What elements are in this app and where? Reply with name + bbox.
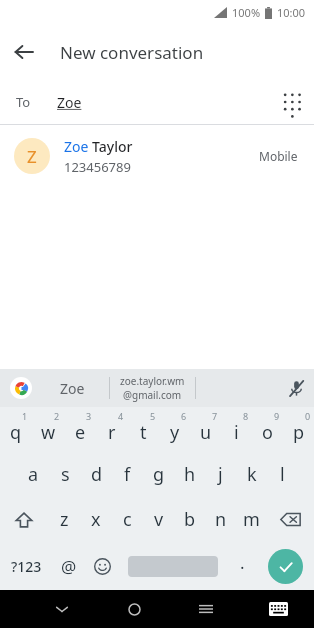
- button[interactable]: Hide keyboard: [42, 590, 82, 628]
- button[interactable]: @: [52, 542, 86, 590]
- button[interactable]: Z: [0, 125, 314, 187]
- staticText: t: [140, 420, 147, 445]
- button[interactable]: f: [112, 452, 143, 497]
- staticText: 4: [118, 410, 124, 422]
- staticText: 123456789: [64, 158, 131, 176]
- staticText: Zoe Taylor: [64, 137, 133, 156]
- button[interactable]: p: [283, 407, 314, 452]
- button[interactable]: r: [96, 407, 128, 452]
- button[interactable]: .: [228, 542, 256, 590]
- staticText: v: [154, 507, 164, 532]
- staticText: 10:00: [277, 5, 306, 20]
- button[interactable]: d: [81, 452, 112, 497]
- button[interactable]: e: [64, 407, 96, 452]
- staticText: 2: [54, 410, 60, 422]
- button[interactable]: y: [159, 407, 190, 452]
- staticText: 7: [212, 410, 218, 422]
- button[interactable]: Dialpad: [270, 80, 314, 124]
- staticText: r: [108, 420, 116, 445]
- staticText: Z: [27, 145, 37, 168]
- staticText: e: [75, 420, 86, 445]
- staticText: Zoe: [57, 93, 82, 112]
- button[interactable]: j: [205, 452, 236, 497]
- button[interactable]: g: [143, 452, 174, 497]
- staticText: j: [218, 462, 223, 487]
- staticText: 6: [181, 410, 187, 422]
- button[interactable]: u: [190, 407, 221, 452]
- staticText: y: [170, 420, 180, 445]
- button[interactable]: Microphone off: [278, 370, 314, 406]
- staticText: h: [184, 462, 196, 487]
- staticText: s: [61, 462, 70, 487]
- staticText: 0: [305, 410, 311, 422]
- button[interactable]: s: [49, 452, 81, 497]
- staticText: Zoe: [60, 379, 85, 398]
- staticText: @: [61, 555, 77, 578]
- staticText: u: [200, 420, 212, 445]
- staticText: 100%: [232, 5, 261, 20]
- button[interactable]: l: [267, 452, 298, 497]
- button[interactable]: h: [174, 452, 205, 497]
- staticText: m: [243, 507, 260, 532]
- staticText: Mobile: [259, 148, 298, 164]
- button[interactable]: n: [205, 497, 236, 542]
- button[interactable]: k: [236, 452, 267, 497]
- staticText: ?123: [11, 557, 42, 576]
- button[interactable]: b: [174, 497, 205, 542]
- staticText: b: [184, 507, 196, 532]
- button[interactable]: m: [236, 497, 267, 542]
- button[interactable]: Emoji: [86, 542, 118, 590]
- staticText: 5: [150, 410, 156, 422]
- staticText: l: [280, 462, 285, 487]
- button[interactable]: x: [80, 497, 112, 542]
- button[interactable]: zoe.taylor.wm: [110, 374, 195, 402]
- button[interactable]: Backspace: [267, 497, 314, 542]
- button[interactable]: Back: [0, 28, 48, 76]
- button[interactable]: v: [143, 497, 174, 542]
- staticText: w: [41, 420, 56, 445]
- button[interactable]: Recent apps: [186, 590, 226, 628]
- button[interactable]: q: [0, 407, 32, 452]
- button[interactable]: Enter: [256, 542, 314, 590]
- staticText: 8: [243, 410, 249, 422]
- button[interactable]: ?123: [0, 542, 52, 590]
- staticText: k: [247, 462, 257, 487]
- staticText: z: [60, 507, 69, 532]
- button[interactable]: z: [48, 497, 80, 542]
- staticText: n: [215, 507, 227, 532]
- button[interactable]: Zoe: [54, 379, 91, 398]
- staticText: o: [262, 420, 273, 445]
- staticText: x: [91, 507, 101, 532]
- staticText: To: [16, 93, 31, 111]
- button[interactable]: Switch keyboard: [258, 590, 298, 628]
- staticText: @gmail.com: [123, 388, 182, 402]
- staticText: c: [123, 507, 132, 532]
- staticText: 1: [22, 410, 28, 422]
- button[interactable]: c: [112, 497, 143, 542]
- staticText: a: [28, 462, 39, 487]
- staticText: 9: [274, 410, 280, 422]
- button[interactable]: i: [221, 407, 252, 452]
- staticText: i: [234, 420, 239, 445]
- staticText: zoe.taylor.wm: [120, 374, 185, 388]
- button[interactable]: t: [128, 407, 159, 452]
- button[interactable]: Home: [114, 590, 154, 628]
- staticText: g: [153, 462, 165, 487]
- staticText: f: [124, 462, 131, 487]
- button[interactable]: Space: [118, 542, 228, 590]
- button[interactable]: w: [32, 407, 64, 452]
- button[interactable]: o: [252, 407, 283, 452]
- staticText: q: [10, 420, 22, 445]
- staticText: 3: [86, 410, 92, 422]
- staticText: p: [293, 420, 305, 445]
- staticText: .: [240, 551, 245, 574]
- button[interactable]: a: [17, 452, 49, 497]
- button[interactable]: Shift: [0, 497, 48, 542]
- staticText: d: [91, 462, 103, 487]
- staticText: New conversation: [60, 41, 204, 64]
